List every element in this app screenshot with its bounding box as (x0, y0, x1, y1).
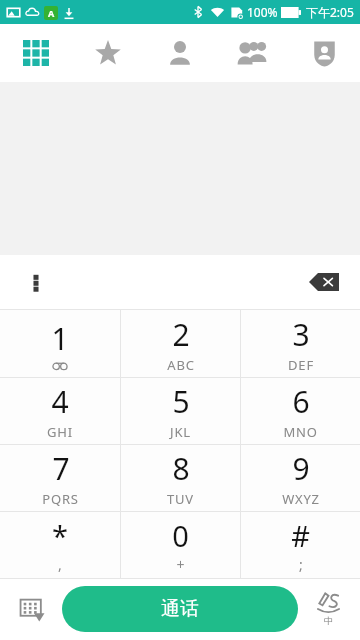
staticText: 0 (172, 516, 189, 555)
staticText: 2 (172, 314, 190, 355)
staticText: * (52, 516, 68, 555)
staticText: GHI (47, 423, 73, 441)
staticText: TUV (167, 490, 194, 508)
button[interactable]: 4 (0, 378, 120, 444)
staticText: 通话 (161, 597, 199, 621)
staticText: 6 (292, 381, 310, 422)
button[interactable]: 5 (121, 378, 240, 444)
button[interactable]: 0 (121, 512, 240, 578)
button[interactable]: 1 (0, 310, 120, 377)
staticText: 9 (292, 448, 310, 489)
staticText: 下午2:05 (306, 4, 354, 20)
button[interactable]: 通话 (62, 586, 298, 632)
staticText: PQRS (42, 490, 79, 508)
staticText: 1 (51, 318, 69, 359)
staticText: + (176, 555, 185, 574)
button[interactable]: Favorites (72, 24, 144, 82)
staticText: 100% (247, 4, 278, 20)
staticText: DEF (288, 356, 314, 374)
staticText: , (58, 555, 62, 574)
button[interactable]: Backspace (302, 260, 346, 304)
button[interactable]: Hide keypad (8, 585, 56, 633)
button[interactable]: Groups (216, 24, 288, 82)
button[interactable]: 6 (241, 378, 360, 444)
staticText: MNO (283, 423, 318, 441)
button[interactable]: * (0, 512, 120, 578)
staticText: 5 (172, 381, 190, 422)
staticText: JKL (170, 423, 191, 441)
button[interactable]: 8 (121, 445, 240, 511)
staticText: 中 (324, 615, 333, 626)
button[interactable]: 9 (241, 445, 360, 511)
button[interactable]: Handwriting input (304, 585, 352, 633)
staticText: 8 (172, 448, 190, 489)
staticText: WXYZ (282, 490, 320, 508)
button[interactable]: 3 (241, 310, 360, 377)
button[interactable]: Dialpad (0, 24, 72, 82)
staticText: A (48, 7, 55, 19)
staticText: 3 (292, 314, 310, 355)
button[interactable]: More options (18, 264, 54, 300)
button[interactable]: Blocked (288, 24, 360, 82)
staticText: 7 (52, 448, 70, 489)
staticText: ABC (167, 356, 195, 374)
button[interactable]: 2 (121, 310, 240, 377)
staticText: # (291, 516, 310, 555)
button[interactable]: Contacts (144, 24, 216, 82)
button[interactable]: # (241, 512, 360, 578)
staticText: 4 (51, 381, 69, 422)
staticText: ; (299, 555, 303, 574)
button[interactable]: 7 (0, 445, 120, 511)
